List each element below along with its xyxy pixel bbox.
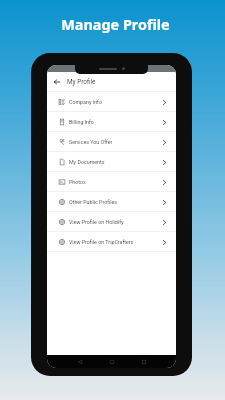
staticText: View Profile on TripCrafters — [69, 239, 134, 245]
button[interactable]: Home — [107, 357, 117, 367]
staticText: Company Info — [69, 99, 102, 105]
button[interactable]: Back — [75, 357, 85, 367]
staticText: My Profile — [67, 78, 96, 86]
staticText: View Profile on Holidify — [69, 219, 124, 225]
staticText: My Documents — [69, 159, 105, 165]
button[interactable]: Billing Info — [47, 112, 176, 132]
button[interactable]: Recent apps — [139, 357, 149, 367]
staticText: Other Public Profiles — [69, 199, 117, 205]
button[interactable]: My Documents — [47, 152, 176, 172]
button[interactable]: Back — [47, 72, 67, 91]
staticText: Services You Offer — [69, 139, 113, 145]
button[interactable]: Other Public Profiles — [47, 192, 176, 212]
button[interactable]: View Profile on TripCrafters — [47, 232, 176, 252]
staticText: Photos — [69, 179, 86, 185]
button[interactable]: Company Info — [47, 92, 176, 112]
button[interactable]: Photos — [47, 172, 176, 192]
staticText: Manage Profile — [61, 15, 170, 35]
staticText: Billing Info — [69, 119, 94, 125]
button[interactable]: Services You Offer — [47, 132, 176, 152]
button[interactable]: View Profile on Holidify — [47, 212, 176, 232]
